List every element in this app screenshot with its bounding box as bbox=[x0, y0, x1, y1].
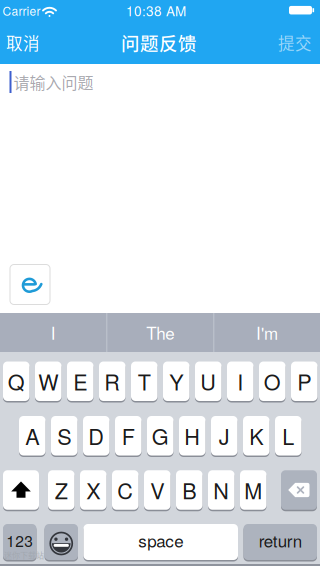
button[interactable]: H bbox=[179, 416, 205, 456]
button[interactable]: The bbox=[108, 313, 212, 352]
staticText: J bbox=[219, 420, 230, 451]
button[interactable]: C bbox=[112, 470, 138, 511]
staticText: Z bbox=[55, 474, 68, 505]
button[interactable]: I bbox=[1, 313, 105, 352]
staticText: E bbox=[73, 366, 87, 397]
button[interactable]: I'm bbox=[215, 313, 319, 352]
button[interactable]: V bbox=[144, 470, 170, 511]
button[interactable]: J bbox=[211, 416, 237, 456]
staticText: 迷你下载站 bbox=[4, 549, 44, 561]
button[interactable]: A bbox=[19, 416, 45, 456]
button[interactable]: E bbox=[67, 361, 93, 402]
button[interactable]: M bbox=[240, 470, 266, 511]
button[interactable]: Z bbox=[48, 470, 74, 511]
button[interactable]: return bbox=[243, 524, 317, 561]
staticText: A bbox=[25, 420, 39, 451]
staticText: 123 bbox=[6, 529, 33, 551]
button[interactable]: G bbox=[147, 416, 173, 456]
staticText: I bbox=[51, 320, 56, 345]
staticText: K bbox=[249, 420, 263, 451]
staticText: space bbox=[138, 528, 183, 552]
button[interactable]: W bbox=[35, 361, 61, 402]
staticText: R bbox=[104, 366, 120, 397]
button[interactable]: T bbox=[131, 361, 157, 402]
staticText: N bbox=[213, 474, 229, 505]
button[interactable]: 123 bbox=[3, 524, 36, 561]
staticText: Q bbox=[8, 366, 25, 397]
staticText: U bbox=[200, 366, 216, 397]
button[interactable]: B bbox=[176, 470, 202, 511]
staticText: The bbox=[146, 320, 174, 345]
button[interactable]: O bbox=[259, 361, 285, 402]
button[interactable]: U bbox=[195, 361, 221, 402]
staticText: I bbox=[237, 366, 243, 397]
button[interactable]: X bbox=[80, 470, 106, 511]
staticText: X bbox=[86, 474, 100, 505]
staticText: 10:38 AM bbox=[126, 1, 186, 20]
staticText: F bbox=[122, 420, 135, 451]
button[interactable]: 添加附件 bbox=[10, 264, 50, 304]
staticText: H bbox=[184, 420, 200, 451]
staticText: O bbox=[264, 366, 281, 397]
button[interactable]: 取消 bbox=[0, 20, 46, 64]
button[interactable]: Y bbox=[163, 361, 189, 402]
button[interactable]: Q bbox=[3, 361, 29, 402]
button[interactable]: N bbox=[208, 470, 234, 511]
staticText: Y bbox=[169, 366, 183, 397]
button[interactable]: K bbox=[243, 416, 269, 456]
staticText: 取消 bbox=[6, 31, 40, 54]
staticText: L bbox=[282, 420, 294, 451]
staticText: return bbox=[259, 528, 302, 552]
button[interactable]: I bbox=[227, 361, 253, 402]
button[interactable]: 提交 bbox=[270, 20, 320, 64]
button[interactable]: space bbox=[83, 524, 238, 561]
button[interactable]: Delete bbox=[281, 470, 317, 511]
button[interactable]: S bbox=[51, 416, 77, 456]
button[interactable]: R bbox=[99, 361, 125, 402]
staticText: V bbox=[150, 474, 164, 505]
staticText: G bbox=[152, 420, 169, 451]
staticText: I'm bbox=[256, 320, 278, 345]
button[interactable]: P bbox=[291, 361, 317, 402]
button[interactable]: Emoji bbox=[44, 524, 78, 561]
staticText: M bbox=[244, 474, 262, 505]
staticText: W bbox=[38, 366, 58, 397]
button[interactable]: L bbox=[275, 416, 301, 456]
button[interactable]: D bbox=[83, 416, 109, 456]
staticText: T bbox=[138, 366, 151, 397]
staticText: B bbox=[182, 474, 196, 505]
button[interactable]: Shift bbox=[3, 470, 39, 511]
staticText: D bbox=[88, 420, 104, 451]
staticText: 问题反馈 bbox=[121, 29, 197, 56]
staticText: S bbox=[57, 420, 71, 451]
staticText: 提交 bbox=[278, 31, 312, 54]
button[interactable]: F bbox=[115, 416, 141, 456]
staticText: C bbox=[117, 474, 133, 505]
staticText: 请输入问题 bbox=[13, 70, 93, 94]
staticText: P bbox=[297, 366, 311, 397]
staticText: Carrier bbox=[2, 2, 40, 19]
